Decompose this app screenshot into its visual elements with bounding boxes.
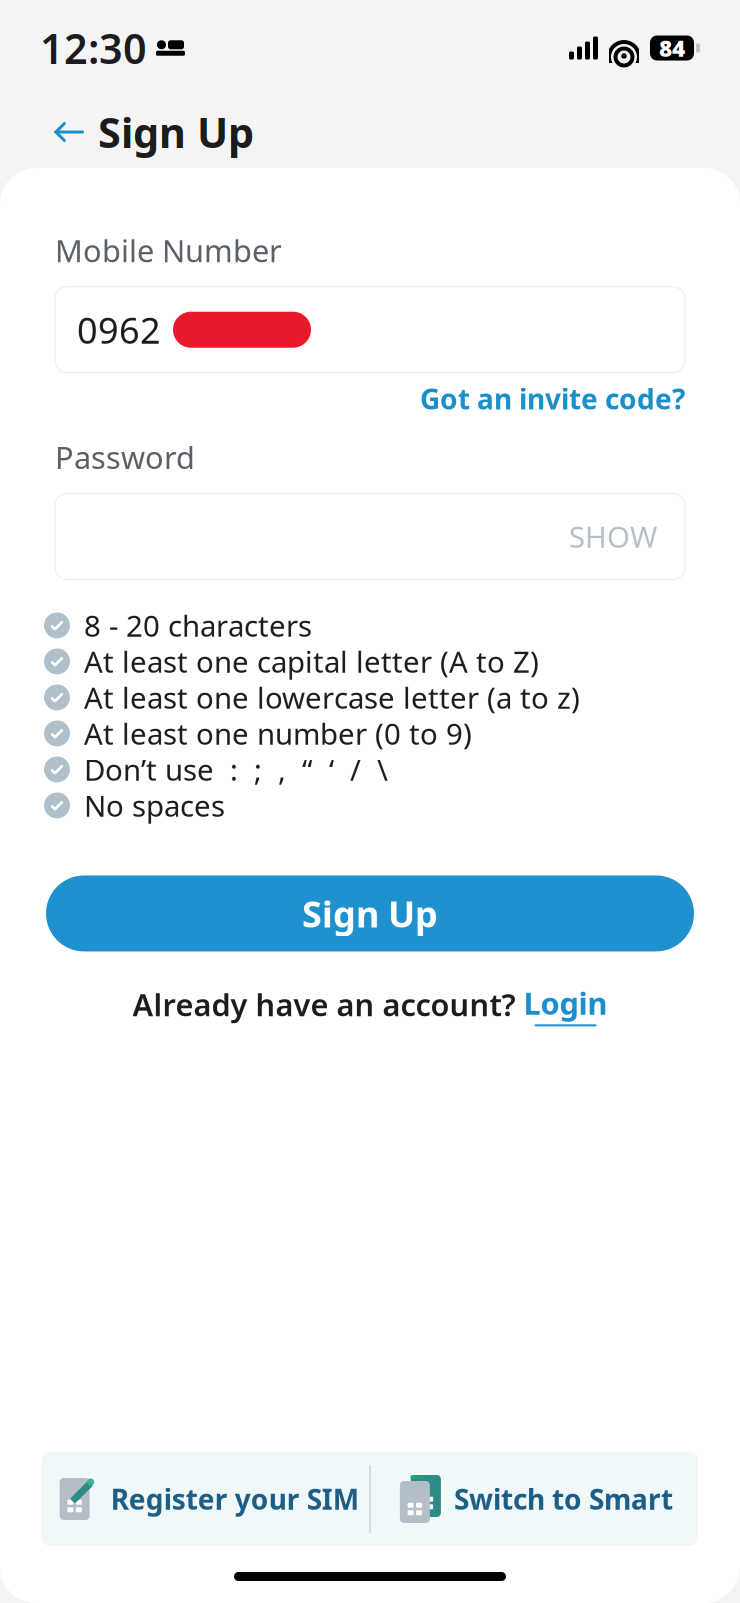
button[interactable]: Already have an account? (0, 977, 740, 1031)
staticText: At least one capital letter (A to Z) (84, 642, 539, 681)
staticText: Don’t use : ; , “ ‘ / \ (84, 750, 388, 789)
staticText: At least one number (0 to 9) (84, 714, 472, 753)
staticText: SHOW (569, 517, 657, 556)
staticText: 12:30 (40, 21, 147, 75)
staticText: Register your SIM (111, 1480, 359, 1518)
staticText: Sign Up (302, 889, 438, 937)
staticText: 0962 (77, 306, 161, 354)
staticText: Sign Up (98, 105, 254, 159)
staticText: Switch to Smart (454, 1480, 673, 1518)
staticText: No spaces (84, 786, 225, 825)
staticText: Mobile Number (55, 230, 282, 271)
staticText: Password (55, 437, 195, 477)
button[interactable]: SHOW (563, 511, 663, 561)
button[interactable]: Sign Up (46, 875, 694, 951)
staticText: Already have an account? (132, 984, 515, 1025)
button[interactable]: Back (40, 106, 98, 158)
button[interactable]: 0962 (55, 287, 685, 373)
staticText: 84 (659, 33, 685, 63)
staticText: 8 - 20 characters (84, 606, 312, 645)
staticText: Login (523, 983, 607, 1023)
button[interactable]: Register your SIM (42, 1452, 369, 1546)
button[interactable]: Switch to Smart (371, 1452, 698, 1546)
staticText: At least one lowercase letter (a to z) (84, 678, 580, 717)
staticText: Got an invite code? (420, 380, 685, 417)
button[interactable]: Got an invite code? (55, 379, 685, 419)
